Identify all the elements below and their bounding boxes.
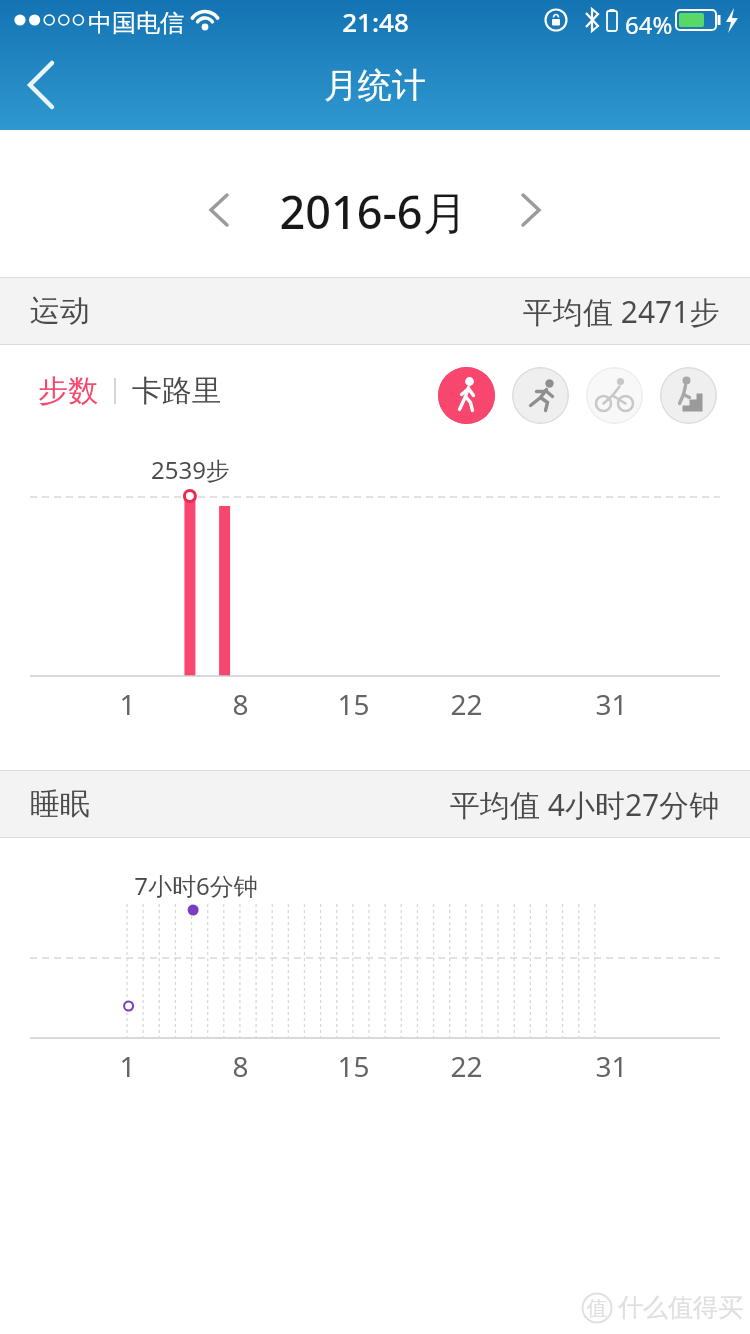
button[interactable]: 步数 — [38, 372, 98, 410]
staticText: 22 — [450, 685, 483, 723]
staticText: 2539步 — [151, 453, 230, 486]
staticText: 月统计 — [324, 64, 426, 107]
button[interactable] — [10, 55, 80, 115]
staticText: 值 — [587, 1296, 607, 1321]
button[interactable] — [495, 175, 565, 245]
button[interactable] — [438, 367, 495, 424]
staticText: 1 — [119, 1047, 136, 1085]
staticText: 31 — [595, 685, 628, 723]
button[interactable]: 卡路里 — [132, 372, 222, 410]
staticText: 8 — [232, 685, 249, 723]
staticText: 21:48 — [342, 4, 409, 39]
staticText: 1 — [119, 685, 136, 723]
staticText: 31 — [595, 1047, 628, 1085]
staticText: 平均值 4小时27分钟 — [450, 784, 720, 825]
button[interactable] — [185, 175, 255, 245]
staticText: 平均值 2471步 — [523, 291, 720, 332]
staticText: 7小时6分钟 — [134, 869, 258, 902]
staticText: 15 — [337, 685, 370, 723]
button[interactable] — [586, 367, 643, 424]
button[interactable] — [512, 367, 569, 424]
staticText: 64% — [625, 8, 673, 41]
staticText: 运动 — [30, 292, 90, 330]
staticText: 8 — [232, 1047, 249, 1085]
staticText: 中国电信 — [88, 8, 184, 38]
staticText: 步数 — [38, 372, 98, 410]
staticText: 15 — [337, 1047, 370, 1085]
staticText: 什么值得买 — [618, 1292, 743, 1323]
staticText: 2016-6月 — [279, 181, 468, 242]
staticText: 22 — [450, 1047, 483, 1085]
button[interactable] — [660, 367, 717, 424]
staticText: 睡眠 — [30, 785, 90, 823]
staticText: 卡路里 — [132, 372, 222, 410]
